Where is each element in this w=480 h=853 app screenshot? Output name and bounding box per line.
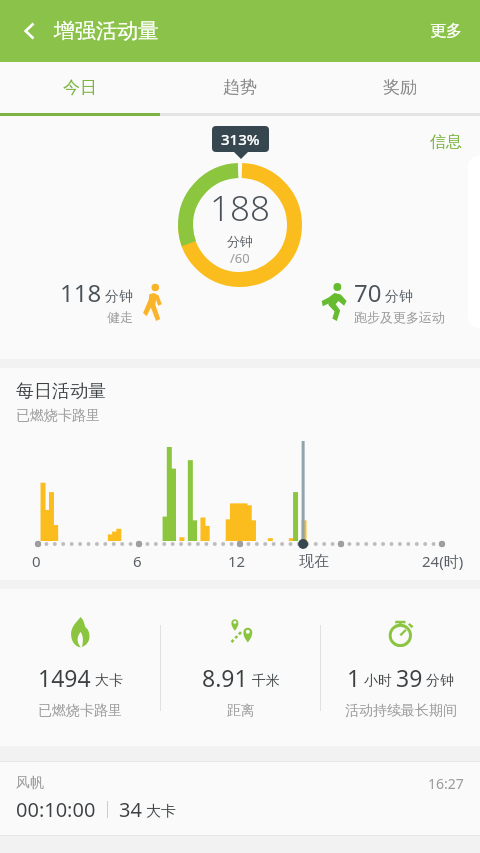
button[interactable]: 信息 <box>424 126 468 158</box>
button[interactable]: 8.91 <box>161 589 320 746</box>
button[interactable]: 奖励 <box>320 62 480 113</box>
staticText: 千米 <box>252 672 280 690</box>
staticText: 活动持续最长期间 <box>345 702 457 720</box>
staticText: 313% <box>221 129 260 149</box>
staticText: 已燃烧卡路里 <box>16 407 100 425</box>
button[interactable]: 风帆 <box>0 762 480 835</box>
staticText: 188 <box>210 184 270 232</box>
staticText: 分钟 <box>227 233 253 249</box>
staticText: 39 <box>396 662 423 693</box>
staticText: 16:27 <box>428 774 464 793</box>
staticText: 分钟 <box>105 288 133 306</box>
staticText: 信息 <box>430 132 462 152</box>
staticText: 分钟 <box>426 672 454 690</box>
staticText: 奖励 <box>383 77 417 98</box>
staticText: 00:10:00 <box>16 796 96 823</box>
staticText: 12 <box>228 551 246 571</box>
staticText: 大卡 <box>146 802 176 821</box>
button[interactable]: Back <box>6 7 54 55</box>
staticText: 已燃烧卡路里 <box>38 702 122 720</box>
button[interactable]: 1494 <box>0 589 160 746</box>
staticText: 今日 <box>63 77 97 98</box>
staticText: 70 <box>354 276 382 309</box>
staticText: 每日活动量 <box>16 380 106 403</box>
button[interactable]: 1 <box>321 589 480 746</box>
staticText: 24(时) <box>422 551 464 571</box>
button[interactable]: 趋势 <box>160 62 320 113</box>
staticText: 健走 <box>107 309 133 325</box>
button[interactable]: 更多 <box>412 7 480 55</box>
staticText: 更多 <box>430 21 462 41</box>
staticText: 增强活动量 <box>54 18 159 44</box>
staticText: 1 <box>347 662 361 693</box>
staticText: 1494 <box>38 662 91 693</box>
staticText: 6 <box>133 551 142 571</box>
staticText: 118 <box>60 276 102 309</box>
button[interactable]: 今日 <box>0 62 160 113</box>
staticText: 风帆 <box>16 774 44 792</box>
staticText: /60 <box>230 249 250 267</box>
staticText: 8.91 <box>202 662 248 693</box>
staticText: 0 <box>32 551 41 571</box>
staticText: 现在 <box>299 552 329 571</box>
staticText: 距离 <box>227 702 255 720</box>
staticText: 趋势 <box>223 77 257 98</box>
staticText: 大卡 <box>95 672 123 690</box>
staticText: 跑步及更多运动 <box>354 309 445 325</box>
staticText: 分钟 <box>385 288 413 306</box>
staticText: 34 <box>119 796 142 823</box>
staticText: 小时 <box>364 672 392 690</box>
